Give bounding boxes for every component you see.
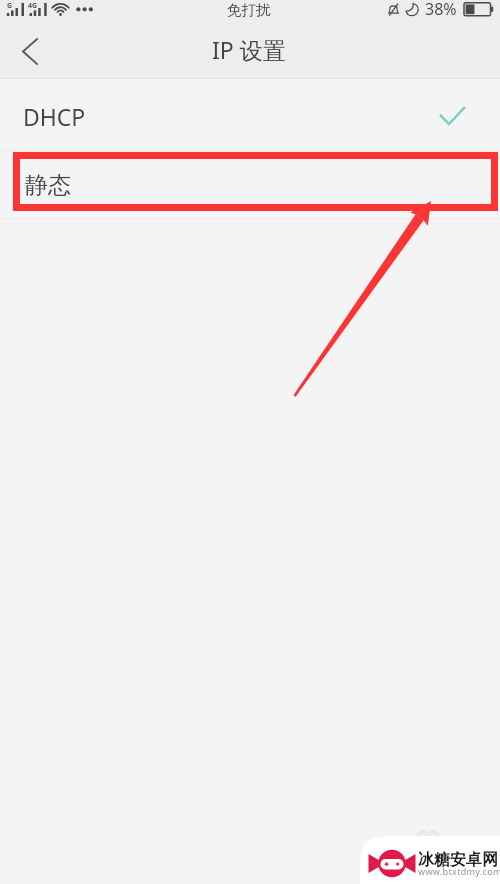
button[interactable]: 静态	[0, 151, 500, 218]
staticText: 免打扰	[227, 1, 271, 19]
staticText: www.btxtdmy.com	[418, 865, 500, 877]
staticText: DHCP	[23, 101, 86, 132]
button[interactable]: DHCP	[0, 79, 500, 150]
staticText: 38%	[425, 0, 457, 20]
staticText: 4G	[28, 1, 38, 11]
staticText: IP 设置	[212, 34, 286, 65]
staticText: 冰糖安卓网	[418, 850, 498, 870]
staticText: G	[7, 1, 13, 11]
button[interactable]: Back	[5, 26, 55, 76]
staticText: 静态	[25, 171, 71, 200]
